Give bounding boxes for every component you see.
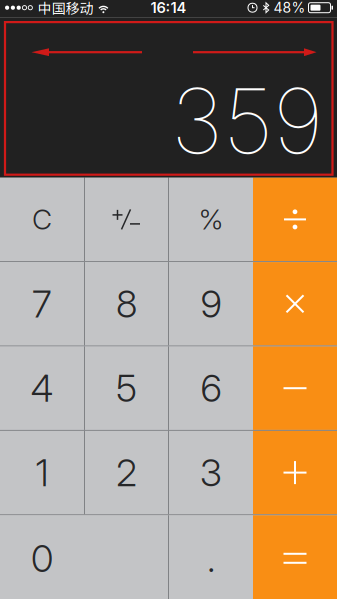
button[interactable]: Multiply xyxy=(253,262,337,345)
button[interactable]: 9 xyxy=(169,262,253,345)
button[interactable]: Add xyxy=(253,431,337,514)
staticText: 359 xyxy=(171,67,323,175)
staticText: 9 xyxy=(200,281,221,326)
button[interactable]: 8 xyxy=(85,262,168,345)
staticText: 48% xyxy=(273,0,305,16)
button[interactable]: 7 xyxy=(0,262,84,345)
button[interactable]: 5 xyxy=(85,346,168,430)
staticText: 4 xyxy=(30,366,53,411)
button[interactable]: Plus minus xyxy=(85,178,168,261)
button[interactable]: 1 xyxy=(0,431,84,514)
button[interactable]: 6 xyxy=(169,346,253,430)
button[interactable]: Subtract xyxy=(253,346,337,430)
staticText: 1 xyxy=(35,450,48,495)
button[interactable]: 0 xyxy=(0,515,168,599)
staticText: 2 xyxy=(116,450,137,495)
staticText: 16:14 xyxy=(150,0,186,16)
staticText: % xyxy=(198,202,223,236)
button[interactable]: Clear xyxy=(0,178,84,261)
button[interactable]: Percent xyxy=(169,178,253,261)
staticText: 0 xyxy=(31,536,53,581)
staticText: . xyxy=(207,536,215,581)
staticText: 5 xyxy=(116,366,137,411)
staticText: 中国移动 xyxy=(37,0,93,18)
button[interactable]: 4 xyxy=(0,346,84,430)
staticText: 7 xyxy=(32,281,52,326)
button[interactable]: 2 xyxy=(85,431,168,514)
staticText: 6 xyxy=(200,366,221,411)
staticText: 3 xyxy=(200,450,222,495)
button[interactable]: Divide xyxy=(253,178,337,261)
button[interactable]: 3 xyxy=(169,431,253,514)
staticText: C xyxy=(32,202,52,236)
button[interactable]: Decimal point xyxy=(169,515,253,599)
button[interactable]: Equals xyxy=(253,515,337,599)
staticText: 8 xyxy=(116,281,137,326)
